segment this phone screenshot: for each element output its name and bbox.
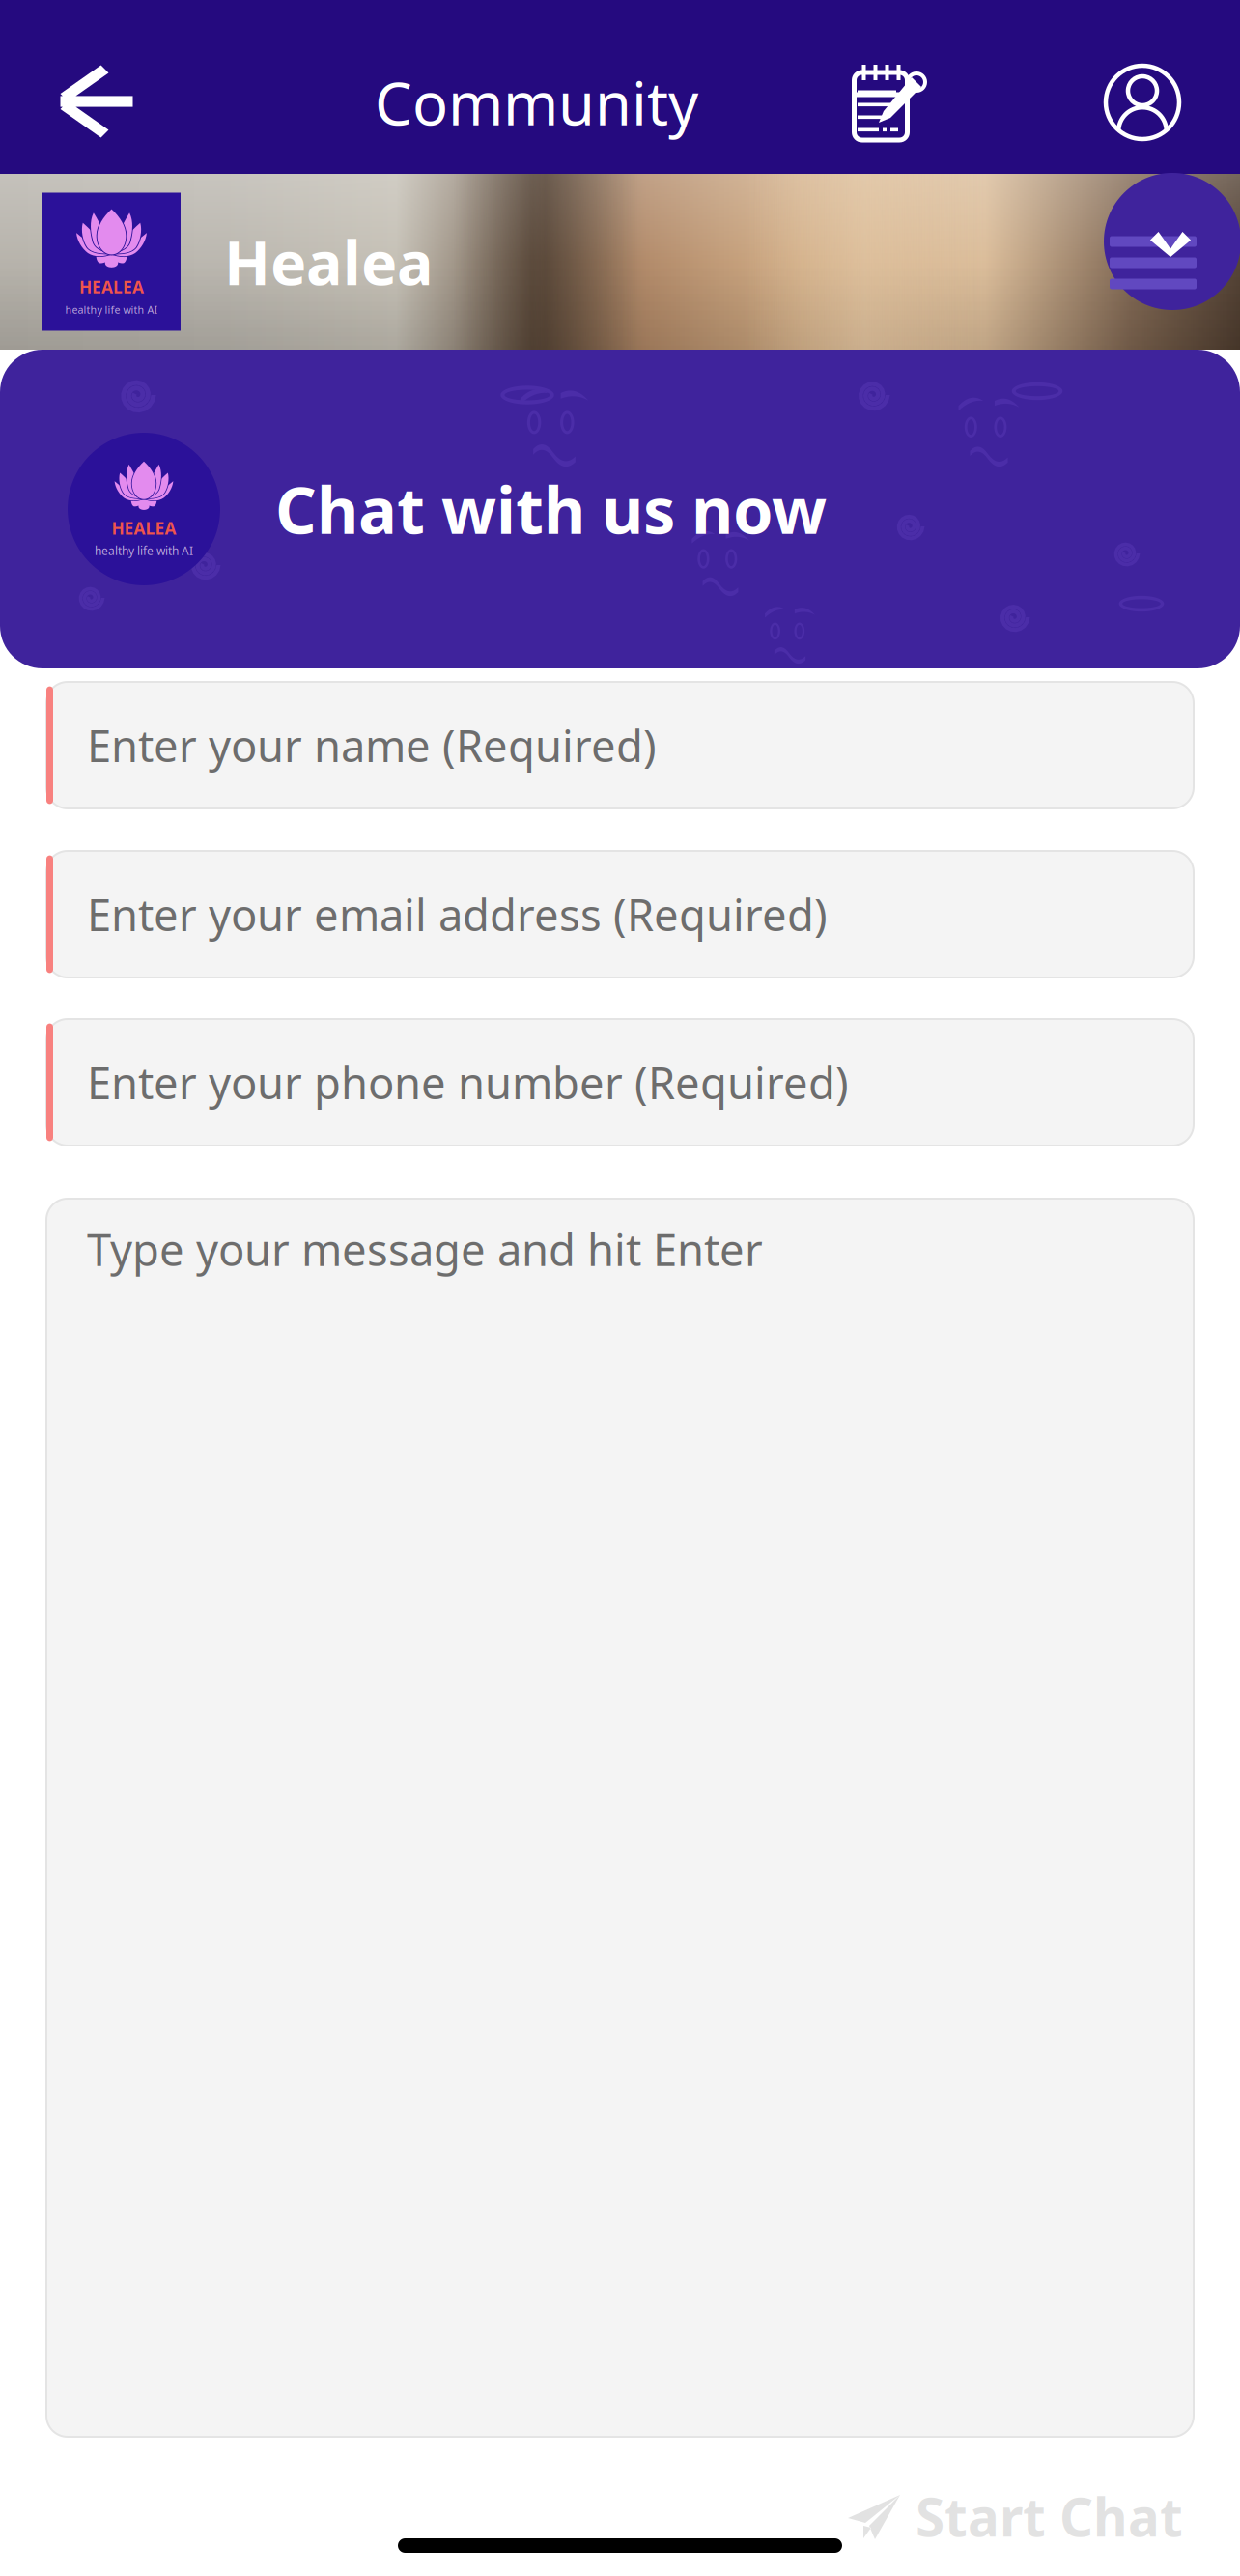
button[interactable]: Enter your name (Required): [46, 682, 1194, 808]
staticText: Type your message and hit Enter: [87, 1220, 763, 1278]
staticText: healthy life with AI: [95, 543, 193, 558]
button[interactable]: Collapse chat: [1104, 174, 1240, 350]
staticText: Community: [375, 63, 698, 142]
button[interactable]: Back: [0, 0, 174, 174]
staticText: Enter your email address (Required): [87, 885, 828, 943]
button[interactable]: Start Chat: [846, 2458, 1194, 2555]
button[interactable]: Profile: [1077, 0, 1208, 174]
staticText: Chat with us now: [275, 466, 827, 552]
staticText: Enter your name (Required): [87, 716, 657, 774]
staticText: HEALEA: [112, 517, 176, 539]
staticText: Enter your phone number (Required): [87, 1053, 849, 1111]
button[interactable]: Enter your phone number (Required): [46, 1019, 1194, 1146]
button[interactable]: Enter your email address (Required): [46, 851, 1194, 977]
staticText: Healea: [224, 222, 434, 302]
staticText: HEALEA: [79, 276, 144, 298]
staticText: Start Chat: [916, 2481, 1183, 2551]
button[interactable]: Compose: [822, 0, 953, 174]
staticText: healthy life with AI: [65, 303, 158, 317]
